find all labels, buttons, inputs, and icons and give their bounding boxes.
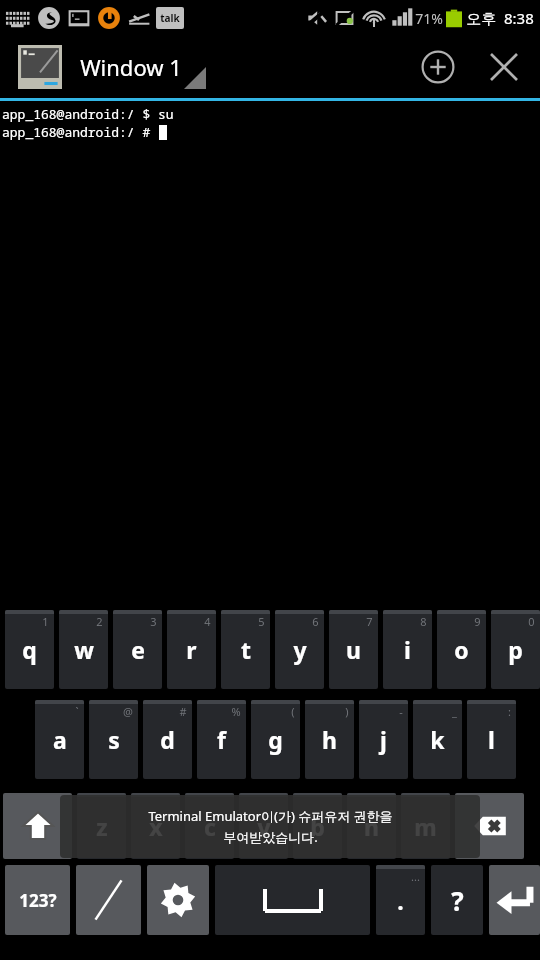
button[interactable]: % — [197, 700, 246, 779]
staticText: 6 — [312, 614, 319, 629]
staticText: j — [380, 724, 387, 755]
button[interactable]: Close window — [476, 39, 532, 95]
button[interactable]: 9 — [437, 610, 486, 689]
button[interactable]: c — [185, 793, 234, 859]
staticText: c — [204, 811, 216, 842]
staticText: ( — [291, 704, 295, 719]
button[interactable]: 0 — [491, 610, 540, 689]
staticText: d — [160, 724, 175, 755]
button[interactable]: 5 — [221, 610, 270, 689]
staticText: 5 — [258, 614, 265, 629]
staticText: z — [96, 811, 108, 842]
button[interactable]: v — [239, 793, 288, 859]
staticText: a — [53, 724, 67, 755]
button[interactable]: Enter — [489, 865, 540, 935]
staticText: q — [22, 634, 37, 665]
button[interactable]: Space — [215, 865, 370, 935]
staticText: : — [508, 704, 511, 719]
staticText: p — [508, 634, 523, 665]
staticText: 3 — [150, 614, 157, 629]
button[interactable]: Shift — [3, 793, 72, 859]
staticText: g — [268, 724, 283, 755]
staticText: ) — [345, 704, 349, 719]
staticText: . — [397, 885, 404, 916]
staticText: # — [179, 704, 187, 719]
staticText: 0 — [528, 614, 535, 629]
staticText: app_168@android:/ # — [2, 123, 159, 141]
button[interactable]: ... — [376, 865, 425, 935]
staticText: 9 — [474, 614, 481, 629]
button[interactable]: z — [77, 793, 126, 859]
staticText: l — [488, 724, 495, 755]
staticText: s — [108, 724, 120, 755]
staticText: f — [217, 724, 226, 755]
button[interactable]: - — [359, 700, 408, 779]
button[interactable]: Backspace — [455, 793, 524, 859]
button[interactable]: ` — [35, 700, 84, 779]
staticText: n — [364, 811, 379, 842]
button[interactable]: @ — [89, 700, 138, 779]
staticText: k — [430, 724, 445, 755]
button[interactable]: Settings — [147, 865, 209, 935]
staticText: 1 — [42, 614, 49, 629]
button[interactable]: Numbers and symbols — [5, 865, 70, 935]
staticText: v — [257, 811, 271, 842]
staticText: 2 — [96, 614, 103, 629]
staticText: @ — [123, 704, 133, 719]
staticText: 부여받았습니다. — [223, 828, 318, 846]
staticText: t — [241, 634, 251, 665]
staticText: - — [399, 704, 403, 719]
button[interactable]: New window — [410, 39, 466, 95]
button[interactable]: ( — [251, 700, 300, 779]
staticText: 7 — [366, 614, 373, 629]
staticText: ` — [75, 704, 79, 719]
staticText: app_168@android:/ $ su — [2, 105, 174, 123]
staticText: 8 — [420, 614, 427, 629]
button[interactable]: 6 — [275, 610, 324, 689]
button[interactable]: Question mark — [431, 865, 483, 935]
staticText: Terminal Emulator이(가) 슈퍼유저 권한을 — [148, 807, 393, 825]
button[interactable]: b — [293, 793, 342, 859]
staticText: 오후 8:38 — [466, 8, 534, 28]
button[interactable]: : — [467, 700, 516, 779]
staticText: r — [186, 634, 197, 665]
staticText: ... — [411, 869, 420, 884]
staticText: Window 1 — [80, 52, 182, 82]
staticText: o — [454, 634, 469, 665]
staticText: talk — [160, 11, 180, 25]
button[interactable]: Language toggle — [76, 865, 141, 935]
staticText: w — [74, 634, 94, 665]
staticText: 4 — [204, 614, 211, 629]
button[interactable]: 7 — [329, 610, 378, 689]
staticText: i — [404, 634, 411, 665]
staticText: 71% — [415, 9, 443, 28]
staticText: % — [231, 704, 241, 719]
staticText: h — [322, 724, 337, 755]
button[interactable]: n — [347, 793, 396, 859]
button[interactable]: m — [401, 793, 450, 859]
staticText: 123? — [19, 889, 57, 912]
staticText: y — [293, 634, 307, 665]
button[interactable]: 1 — [5, 610, 54, 689]
button[interactable]: 8 — [383, 610, 432, 689]
staticText: ? — [451, 883, 464, 918]
button[interactable]: ) — [305, 700, 354, 779]
button[interactable]: _ — [413, 700, 462, 779]
button[interactable]: 3 — [113, 610, 162, 689]
staticText: e — [131, 634, 145, 665]
staticText: x — [149, 811, 163, 842]
button[interactable]: x — [131, 793, 180, 859]
button[interactable]: # — [143, 700, 192, 779]
button[interactable]: 2 — [59, 610, 108, 689]
staticText: m — [414, 811, 437, 842]
staticText: b — [310, 811, 325, 842]
staticText: _ — [452, 704, 457, 719]
button[interactable]: 4 — [167, 610, 216, 689]
staticText: u — [346, 634, 361, 665]
